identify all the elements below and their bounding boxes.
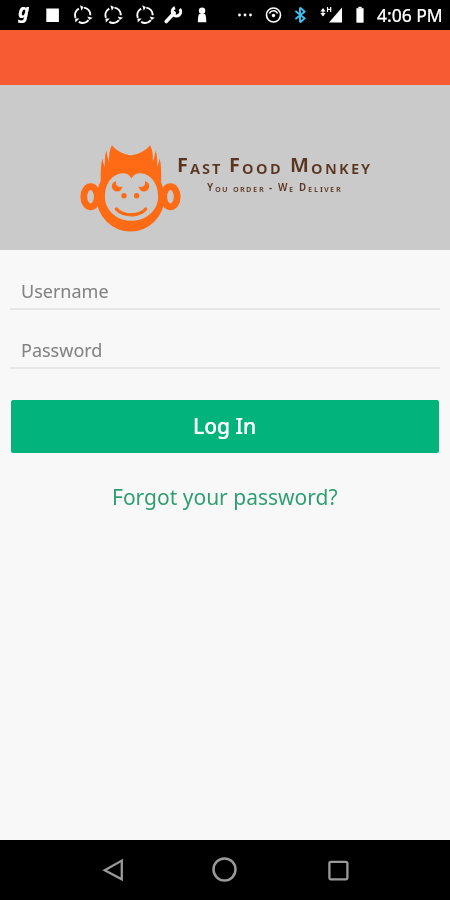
staticText: R: [259, 184, 265, 194]
staticText: E: [289, 184, 295, 194]
staticText: D: [299, 181, 308, 194]
staticText: K: [339, 158, 351, 178]
staticText: O: [311, 158, 325, 178]
staticText: V: [324, 184, 330, 194]
staticText: F: [229, 151, 242, 178]
staticText: 4:06 PM: [377, 3, 443, 27]
staticText: L: [314, 184, 320, 194]
staticText: D: [270, 158, 283, 178]
staticText: I: [320, 184, 324, 194]
staticText: Y: [361, 158, 372, 178]
staticText: F: [177, 151, 190, 178]
staticText: T: [212, 158, 222, 178]
staticText: Log In: [193, 412, 257, 441]
staticText: E: [253, 184, 259, 194]
staticText: R: [336, 184, 342, 194]
button[interactable]: Log In: [11, 400, 439, 453]
staticText: E: [330, 184, 336, 194]
button[interactable]: Back: [86, 840, 140, 900]
staticText: E: [308, 184, 314, 194]
button[interactable]: Username: [0, 279, 450, 310]
staticText: O: [233, 184, 240, 194]
staticText: U: [222, 184, 229, 194]
staticText: O: [256, 158, 270, 178]
staticText: -: [269, 181, 274, 194]
button[interactable]: Home: [198, 840, 252, 900]
staticText: R: [240, 184, 246, 194]
staticText: D: [246, 184, 253, 194]
staticText: Password: [21, 338, 103, 363]
staticText: W: [278, 181, 289, 194]
staticText: Y: [207, 181, 215, 194]
staticText: O: [242, 158, 256, 178]
button[interactable]: Password: [0, 338, 450, 369]
staticText: S: [202, 158, 212, 178]
staticText: M: [290, 151, 311, 178]
button[interactable]: Forgot your password?: [104, 479, 346, 516]
staticText: A: [190, 158, 202, 178]
staticText: g: [18, 0, 30, 24]
staticText: Forgot your password?: [112, 483, 338, 512]
staticText: N: [325, 158, 339, 178]
staticText: E: [351, 158, 361, 178]
staticText: O: [215, 184, 222, 194]
staticText: Username: [21, 279, 109, 304]
button[interactable]: Recents: [311, 840, 365, 900]
